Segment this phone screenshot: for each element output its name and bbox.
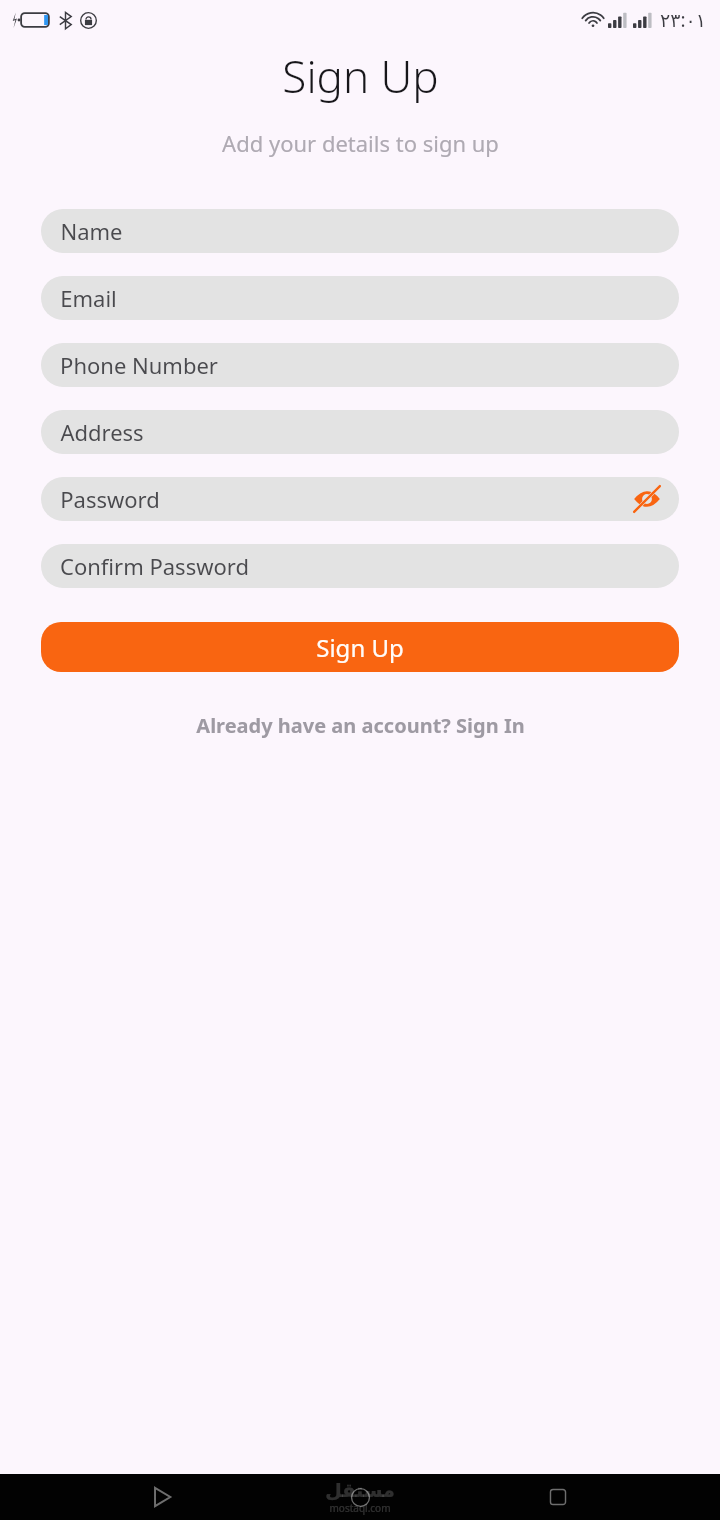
- staticText: Password: [60, 484, 160, 514]
- staticText: mostaql.com: [329, 1501, 391, 1515]
- button[interactable]: Home: [336, 1474, 384, 1520]
- staticText: ٢٣:٠١: [660, 7, 706, 33]
- button[interactable]: Toggle password visibility: [631, 483, 663, 515]
- button[interactable]: Recent apps: [534, 1474, 582, 1520]
- button[interactable]: Password: [41, 477, 679, 521]
- button[interactable]: Back: [138, 1474, 186, 1520]
- button[interactable]: Sign Up: [41, 622, 679, 672]
- button[interactable]: Confirm Password: [41, 544, 679, 588]
- staticText: Add your details to sign up: [222, 128, 499, 158]
- button[interactable]: Name: [41, 209, 679, 253]
- button[interactable]: Phone Number: [41, 343, 679, 387]
- staticText: Email: [60, 283, 117, 313]
- staticText: Phone Number: [60, 350, 218, 380]
- staticText: Already have an account? Sign In: [196, 712, 525, 739]
- staticText: مستقل: [325, 1479, 395, 1501]
- staticText: Confirm Password: [60, 551, 249, 581]
- staticText: Sign Up: [282, 46, 439, 106]
- staticText: Sign Up: [316, 631, 404, 664]
- staticText: Name: [60, 216, 123, 246]
- button[interactable]: Email: [41, 276, 679, 320]
- button[interactable]: Address: [41, 410, 679, 454]
- staticText: Address: [60, 417, 144, 447]
- button[interactable]: Already have an account? Sign In: [184, 706, 537, 745]
